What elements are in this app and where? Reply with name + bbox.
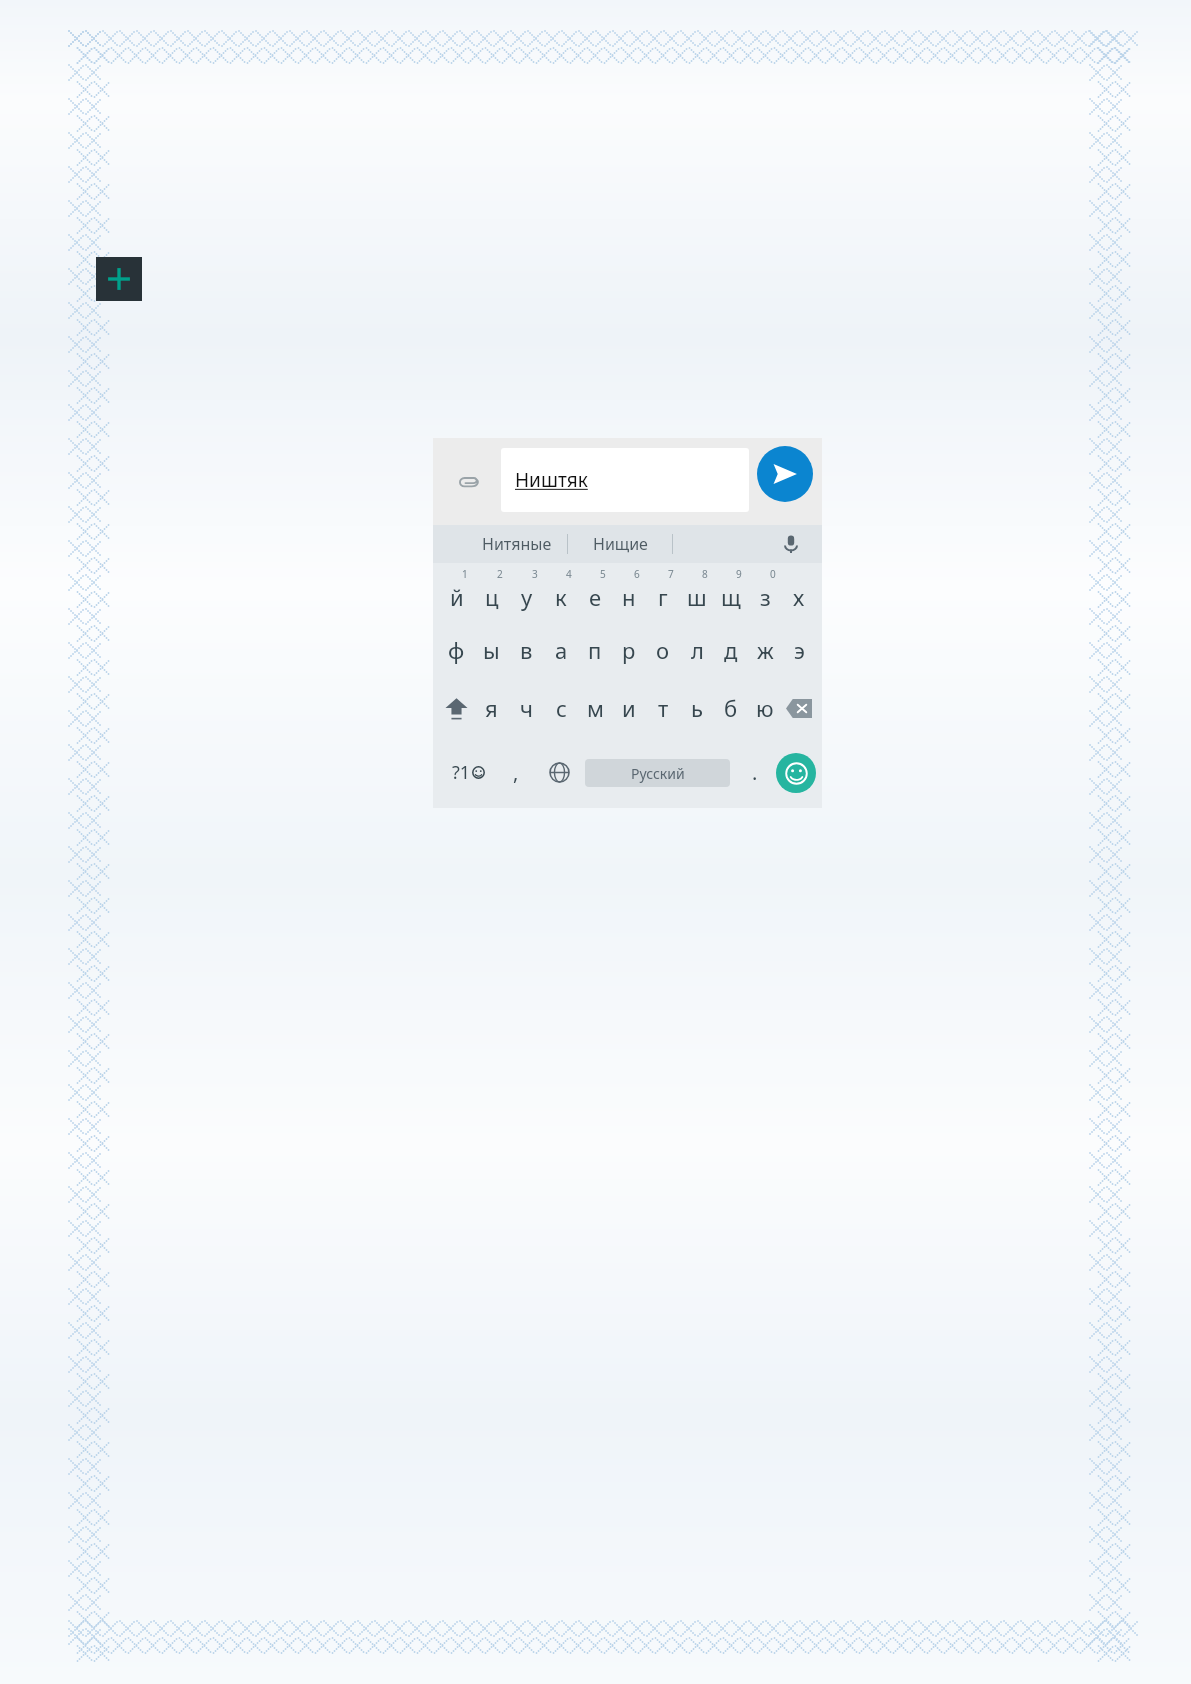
staticText: ч [520,693,533,723]
button[interactable]: л [680,621,714,679]
button[interactable]: 0 [748,563,782,621]
button[interactable]: 6 [612,563,646,621]
staticText: о [656,635,670,665]
staticText: э [794,635,805,665]
button[interactable]: д [714,621,748,679]
staticText: Нитяные [482,533,552,555]
staticText: л [691,635,704,665]
staticText: я [485,693,498,723]
staticText: д [724,635,738,665]
staticText: . [752,759,758,786]
staticText: а [555,635,568,665]
staticText: ш [687,582,707,612]
button[interactable]: ч [509,679,544,737]
staticText: 5 [600,567,606,581]
button[interactable]: . [734,737,776,808]
staticText: ы [483,635,500,665]
button[interactable]: я [474,679,509,737]
staticText: Ништяк [515,467,588,493]
staticText: к [555,582,567,612]
button[interactable]: 2 [474,563,509,621]
staticText: р [622,635,636,665]
button[interactable]: Ништяк [501,448,749,512]
button[interactable]: Symbols [441,737,495,808]
staticText: в [520,635,533,665]
staticText: ф [448,635,465,665]
button[interactable]: 8 [680,563,714,621]
button[interactable]: Нитяные [467,525,567,563]
staticText: 9 [736,567,742,581]
button[interactable]: Send [757,446,813,502]
staticText: и [622,693,636,723]
button[interactable]: ж [748,621,782,679]
button[interactable]: м [578,679,612,737]
staticText: х [793,582,805,612]
staticText: 8 [702,567,708,581]
button[interactable]: 1 [439,563,474,621]
button[interactable]: и [612,679,646,737]
staticText: , [513,759,519,786]
staticText: 3 [532,567,538,581]
button[interactable]: р [612,621,646,679]
button[interactable]: Emoji [776,753,816,793]
staticText: ж [757,635,774,665]
staticText: 7 [668,567,674,581]
staticText: Нищие [593,533,648,555]
button[interactable]: х [782,563,816,621]
button[interactable]: Change language [537,737,581,808]
button[interactable]: Нищие [568,525,672,563]
button[interactable]: Attach [447,460,491,504]
staticText: у [521,582,533,612]
staticText: 4 [566,567,572,581]
staticText: 1 [462,567,468,581]
button[interactable]: с [544,679,578,737]
staticText: 6 [634,567,640,581]
staticText: Русский [631,764,685,783]
staticText: б [724,693,738,723]
staticText: е [589,582,602,612]
button[interactable]: ф [439,621,474,679]
staticText: щ [721,582,741,612]
button[interactable]: о [646,621,680,679]
button[interactable]: , [495,737,537,808]
staticText: й [450,582,464,612]
staticText: ь [691,693,703,723]
staticText: 0 [770,567,776,581]
staticText: з [760,582,771,612]
staticText: н [622,582,636,612]
button[interactable]: 5 [578,563,612,621]
button[interactable]: Русский [585,759,730,787]
staticText: ?1 [452,760,471,785]
staticText: м [587,693,604,723]
button[interactable]: 4 [544,563,578,621]
button[interactable]: 7 [646,563,680,621]
button[interactable]: в [509,621,544,679]
button[interactable]: б [714,679,748,737]
button[interactable]: ю [748,679,782,737]
staticText: г [658,582,668,612]
staticText: ц [485,582,499,612]
staticText: 2 [497,567,503,581]
button[interactable]: а [544,621,578,679]
button[interactable]: 3 [509,563,544,621]
button[interactable]: Voice input [768,525,814,563]
button[interactable]: т [646,679,680,737]
button[interactable]: Backspace [782,679,816,737]
button[interactable]: 9 [714,563,748,621]
button[interactable]: Add [96,257,142,301]
button[interactable]: Shift [439,679,474,737]
staticText: с [556,693,567,723]
button[interactable]: ы [474,621,509,679]
staticText: ю [756,693,774,723]
staticText: т [658,693,669,723]
button[interactable]: э [782,621,816,679]
button[interactable]: ь [680,679,714,737]
button[interactable]: п [578,621,612,679]
staticText: п [588,635,602,665]
